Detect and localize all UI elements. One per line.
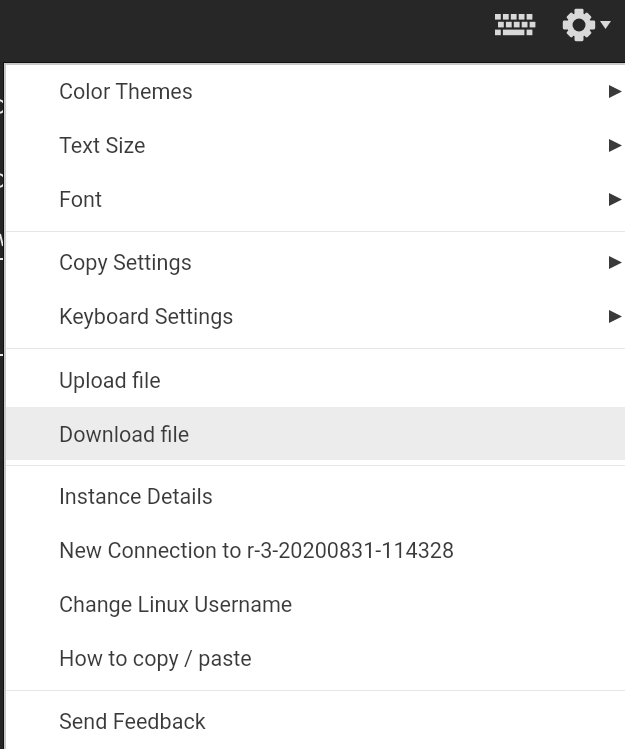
staticText: Download file	[59, 422, 190, 447]
button[interactable]: New Connection to r-3-20200831-114328	[6, 523, 625, 577]
staticText: Font	[59, 187, 103, 212]
button[interactable]: Instance Details	[6, 469, 625, 523]
staticText: Copy Settings	[59, 250, 192, 275]
staticText: New Connection to r-3-20200831-114328	[59, 538, 455, 563]
button[interactable]: Keyboard Settings	[6, 289, 625, 343]
button[interactable]: Copy Settings	[6, 235, 625, 289]
button[interactable]: Text Size	[6, 118, 625, 172]
staticText: Change Linux Username	[59, 592, 293, 617]
staticText: Keyboard Settings	[59, 304, 234, 329]
button[interactable]: Change Linux Username	[6, 577, 625, 631]
button[interactable]: Download file	[6, 407, 625, 461]
staticText: How to copy / paste	[59, 646, 252, 671]
button[interactable]: Settings menu	[552, 0, 625, 62]
staticText: Instance Details	[59, 484, 213, 509]
staticText: Color Themes	[59, 79, 193, 104]
staticText: Upload file	[59, 368, 161, 393]
button[interactable]: Upload file	[6, 353, 625, 407]
button[interactable]: Color Themes	[6, 64, 625, 118]
button[interactable]: Font	[6, 172, 625, 226]
staticText: Send Feedback	[59, 709, 206, 734]
button[interactable]: How to copy / paste	[6, 631, 625, 685]
button[interactable]: Show keyboard	[483, 0, 545, 62]
button[interactable]: Send Feedback	[6, 694, 625, 748]
staticText: Text Size	[59, 133, 146, 158]
